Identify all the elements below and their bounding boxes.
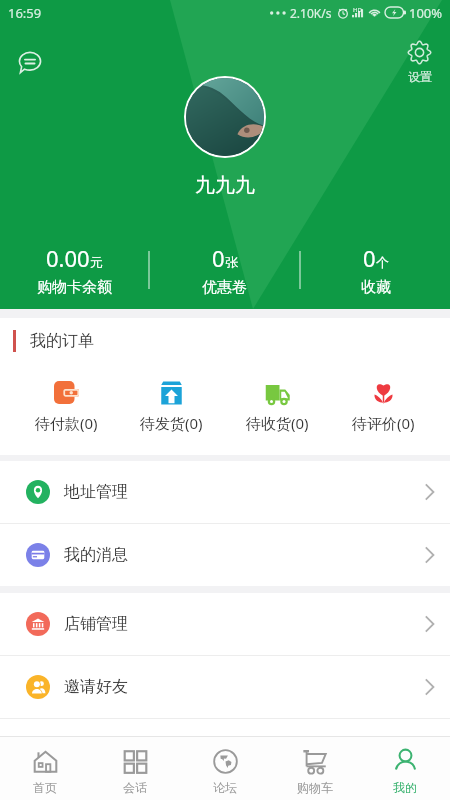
staticText: 张 [225, 254, 238, 270]
staticText: 待发货(0) [140, 413, 203, 433]
staticText: 店铺管理 [64, 614, 128, 634]
staticText: 元 [90, 254, 103, 270]
button[interactable]: 邀请好友 [0, 656, 450, 718]
staticText: 待收货(0) [246, 413, 309, 433]
staticText: 收藏 [361, 278, 391, 297]
button[interactable]: 会话 [90, 737, 180, 800]
staticText: 我的订单 [30, 331, 94, 351]
button[interactable]: 0 [301, 243, 450, 297]
staticText: 购物卡余额 [37, 278, 112, 297]
button[interactable]: 我的消息 [0, 524, 450, 586]
button[interactable]: 购物车 [270, 737, 360, 800]
button[interactable]: Avatar [186, 78, 264, 156]
button[interactable]: 首页 [0, 737, 90, 800]
staticText: 九九九 [195, 173, 255, 198]
staticText: 2.10K/s [290, 5, 332, 21]
button[interactable]: 待评价(0) [330, 364, 436, 433]
button[interactable]: 待收货(0) [224, 364, 330, 433]
staticText: 论坛 [213, 780, 237, 795]
staticText: 设置 [408, 69, 432, 84]
button[interactable]: 店铺管理 [0, 593, 450, 655]
staticText: 0.00 [46, 243, 90, 273]
staticText: 会话 [123, 780, 147, 795]
staticText: 我的 [393, 780, 417, 795]
staticText: 待评价(0) [352, 413, 415, 433]
staticText: 0 [363, 243, 376, 273]
button[interactable]: 论坛 [180, 737, 270, 800]
staticText: 购物车 [297, 780, 333, 795]
button[interactable]: 我的 [360, 737, 450, 800]
button[interactable]: 0 [150, 243, 299, 297]
button[interactable]: 设置 [407, 40, 432, 84]
staticText: 0 [212, 243, 225, 273]
staticText: 100% [409, 4, 443, 22]
staticText: 优惠卷 [202, 278, 247, 297]
staticText: HD [353, 6, 362, 14]
button[interactable]: 待发货(0) [119, 364, 224, 433]
staticText: 邀请好友 [64, 677, 128, 697]
button[interactable]: Messages [12, 44, 48, 80]
button[interactable]: 待付款(0) [14, 364, 119, 433]
staticText: 待付款(0) [35, 413, 98, 433]
staticText: 16:59 [8, 4, 42, 22]
staticText: 个 [376, 254, 389, 270]
staticText: 首页 [33, 780, 57, 795]
button[interactable]: 地址管理 [0, 461, 450, 523]
staticText: 地址管理 [64, 482, 128, 502]
button[interactable]: 0.00 [0, 243, 148, 297]
staticText: 我的消息 [64, 545, 128, 565]
